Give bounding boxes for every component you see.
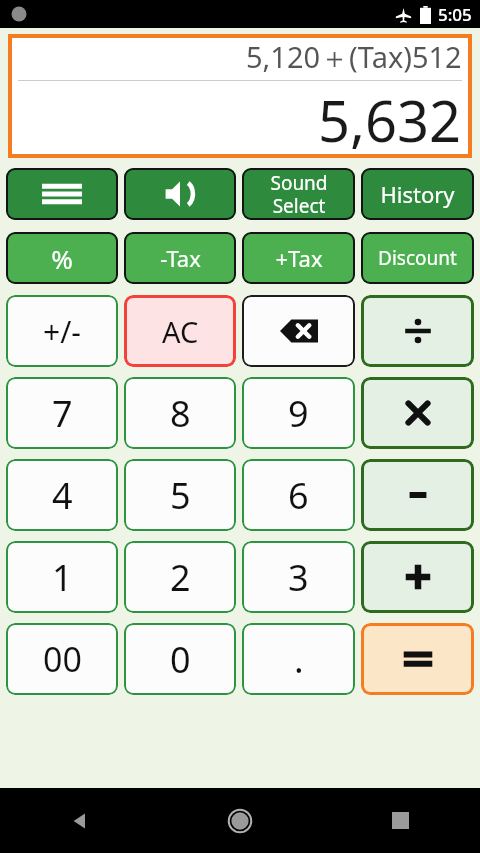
button[interactable]: History [361, 168, 474, 220]
button[interactable]: Recents [320, 788, 480, 853]
button[interactable]: Plus [361, 541, 474, 613]
button[interactable]: 00 [6, 623, 118, 695]
button[interactable]: Menu [6, 168, 118, 220]
button[interactable]: 9 [242, 377, 355, 449]
staticText: History [380, 179, 455, 209]
button[interactable]: 6 [242, 459, 355, 531]
button[interactable]: 3 [242, 541, 355, 613]
button[interactable]: Home [160, 788, 320, 853]
staticText: 1 [52, 553, 73, 602]
button[interactable]: Equals [361, 623, 474, 695]
button[interactable]: Sound [124, 168, 236, 220]
staticText: 0 [170, 635, 191, 684]
staticText: % [51, 241, 73, 276]
staticText: Sound Select [270, 170, 328, 219]
button[interactable]: AC [124, 295, 236, 367]
staticText: AC [162, 312, 199, 351]
button[interactable]: 4 [6, 459, 118, 531]
staticText: +/- [43, 311, 81, 352]
button[interactable]: Sound Select [242, 168, 355, 220]
button[interactable]: Back [0, 788, 160, 853]
staticText: -Tax [160, 243, 201, 273]
staticText: 7 [52, 389, 73, 438]
staticText: . [294, 635, 304, 684]
button[interactable]: 5 [124, 459, 236, 531]
button[interactable]: Multiply [361, 377, 474, 449]
button[interactable]: 7 [6, 377, 118, 449]
button[interactable]: Minus [361, 459, 474, 531]
button[interactable]: Divide [361, 295, 474, 367]
button[interactable]: . [242, 623, 355, 695]
staticText: 5 [170, 471, 191, 520]
staticText: 3 [288, 553, 309, 602]
button[interactable]: % [6, 232, 118, 284]
staticText: 8 [170, 389, 191, 438]
button[interactable]: 1 [6, 541, 118, 613]
staticText: 00 [43, 636, 82, 682]
button[interactable]: Discount [361, 232, 474, 284]
button[interactable]: +/- [6, 295, 118, 367]
staticText: 6 [288, 471, 309, 520]
staticText: 9 [288, 389, 309, 438]
button[interactable]: 8 [124, 377, 236, 449]
staticText: +Tax [275, 243, 323, 273]
button[interactable]: 2 [124, 541, 236, 613]
button[interactable]: Backspace [242, 295, 355, 367]
button[interactable]: 0 [124, 623, 236, 695]
staticText: 4 [52, 471, 73, 520]
button[interactable]: -Tax [124, 232, 236, 284]
staticText: 5:05 [438, 3, 472, 26]
staticText: 2 [170, 553, 191, 602]
button[interactable]: +Tax [242, 232, 355, 284]
staticText: Discount [378, 245, 457, 271]
staticText: 5,632 [318, 82, 462, 158]
staticText: 5,120＋(Tax)512 [246, 37, 462, 77]
